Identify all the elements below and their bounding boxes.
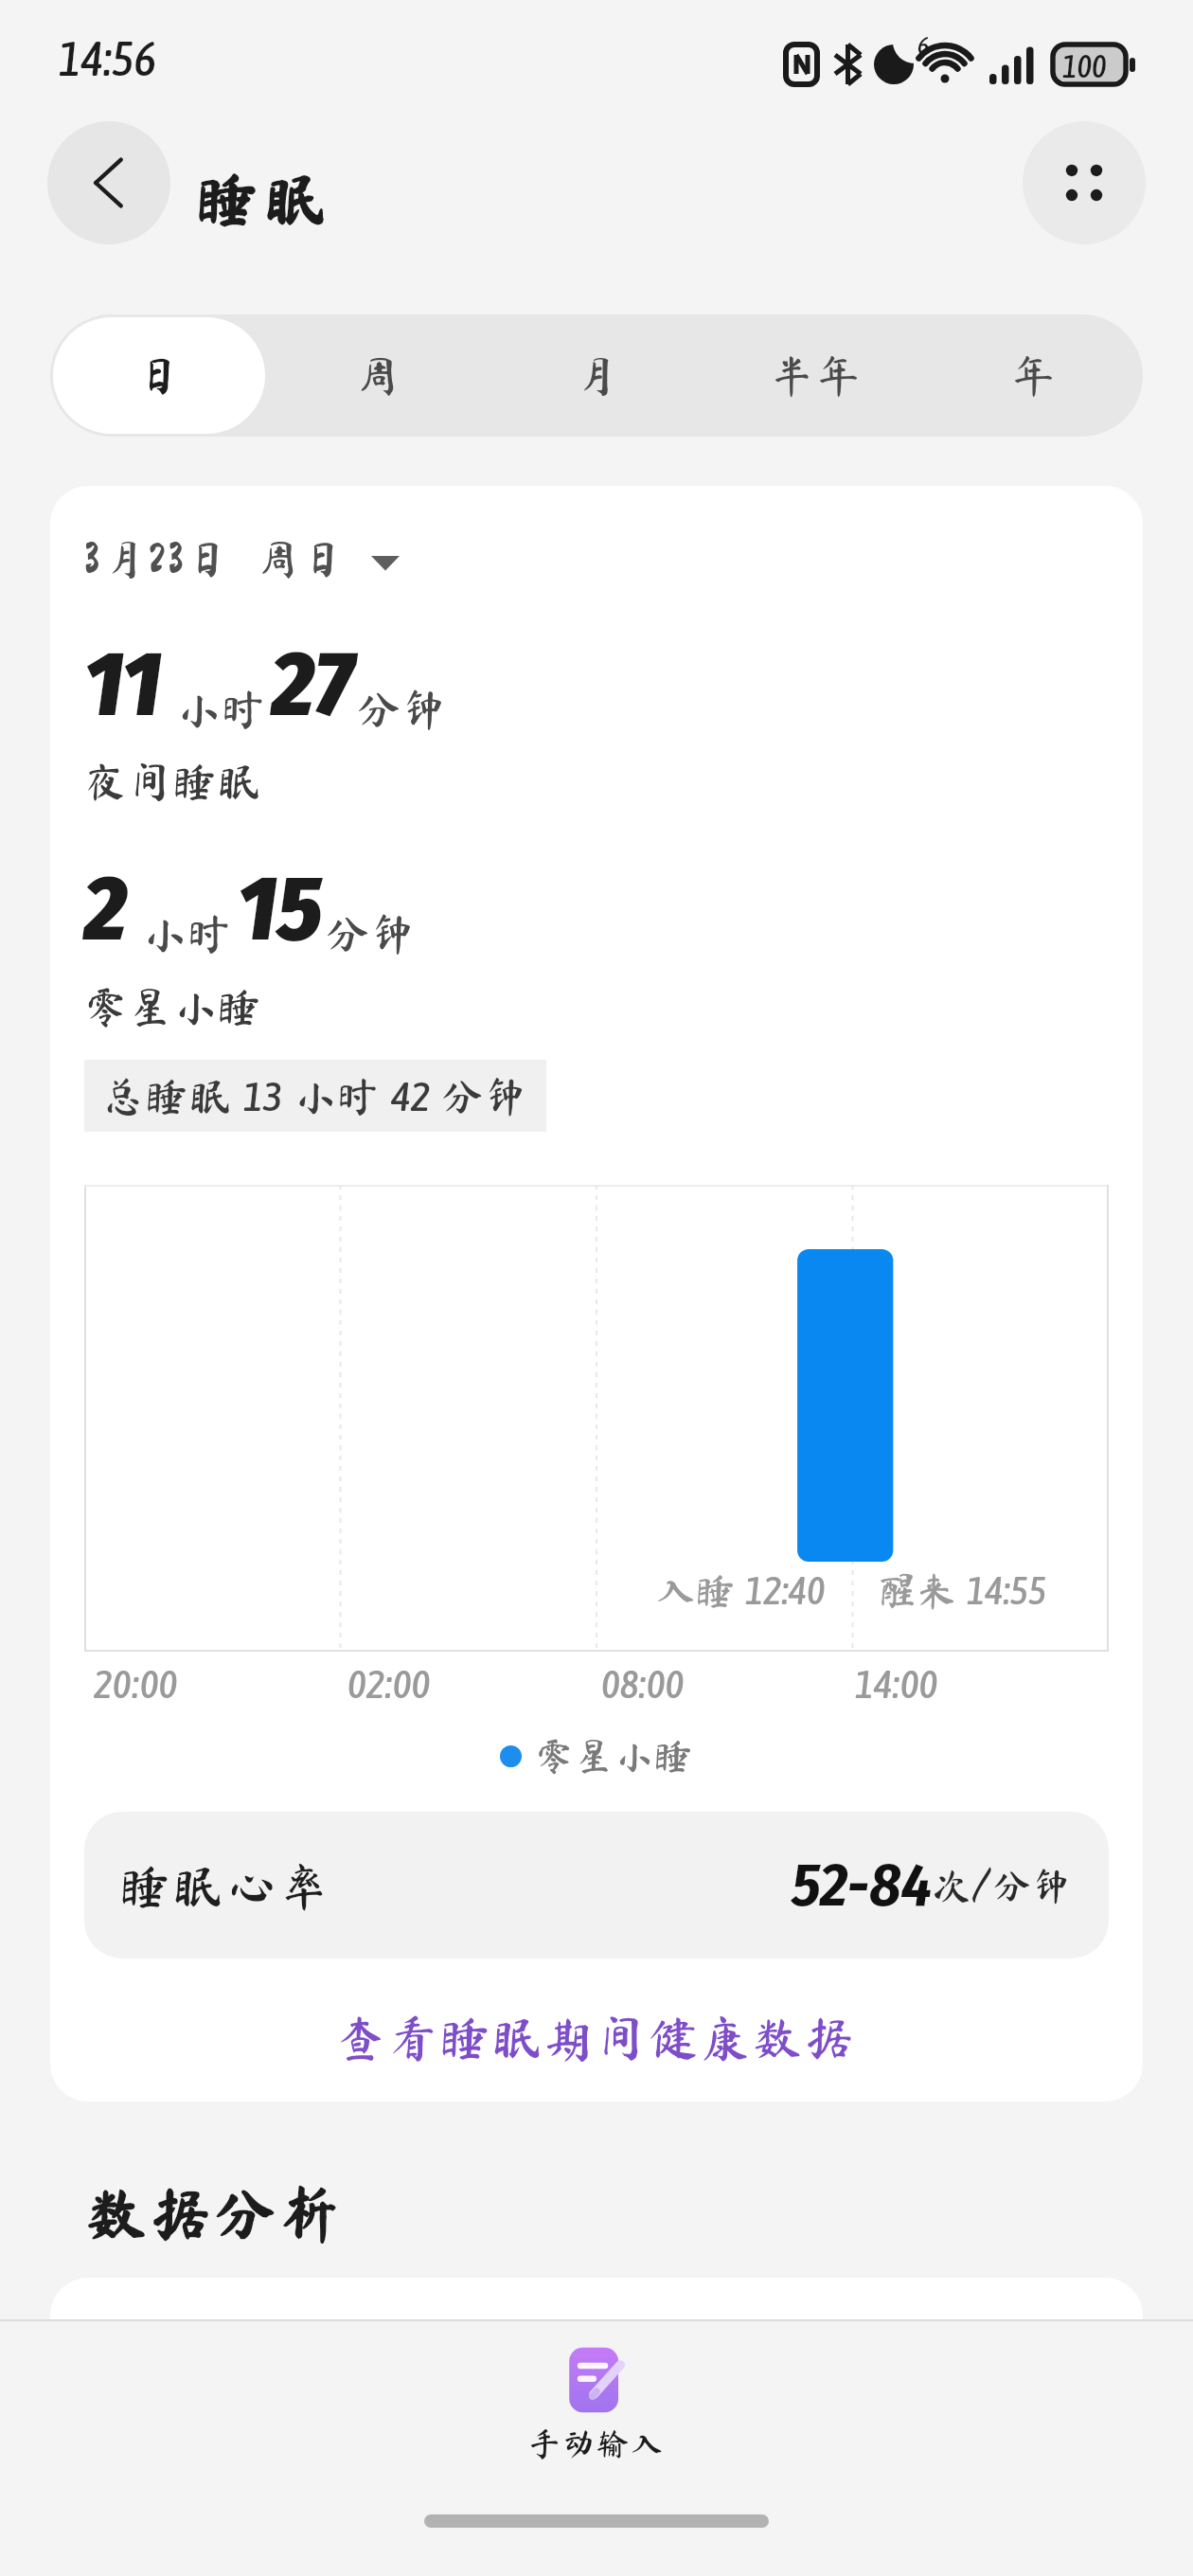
staticText: 数据分析 [86, 2183, 344, 2244]
staticText: 分钟 [325, 912, 416, 956]
staticText: 14:56 [59, 31, 156, 85]
staticText: 周 [354, 354, 401, 398]
staticText: 分钟 [356, 688, 447, 731]
staticText: 年 [1010, 354, 1057, 398]
button[interactable]: 年 [927, 317, 1140, 434]
staticText: 次/分钟 [933, 1867, 1073, 1905]
staticText: 分钟 [431, 1075, 528, 1117]
staticText: 夜间睡眠 [84, 760, 263, 802]
staticText: 08:00 [601, 1661, 685, 1707]
staticText: 醒来 [878, 1571, 967, 1610]
staticText: 3月23日 周日 [84, 538, 348, 580]
staticText: 11 [84, 630, 162, 739]
staticText: 零星小睡 [84, 985, 263, 1028]
staticText: 查看睡眠期间健康数据 [336, 2012, 858, 2062]
staticText: 小时 [175, 688, 266, 731]
staticText: 14:55 [967, 1568, 1047, 1613]
button[interactable]: 月 [490, 317, 703, 434]
button[interactable]: 周 [271, 317, 484, 434]
staticText: 6 [917, 31, 930, 60]
staticText: 小时 [283, 1075, 391, 1117]
staticText: 02:00 [347, 1661, 431, 1707]
staticText: 半年 [769, 354, 862, 398]
staticText: 总睡眠 [102, 1075, 243, 1117]
staticText: 15 [238, 854, 323, 963]
button[interactable]: 查看睡眠期间健康数据 [84, 2012, 1109, 2062]
button[interactable]: More options [1023, 121, 1146, 244]
staticText: 100 [1062, 48, 1107, 84]
staticText: 52-84 [792, 1849, 933, 1922]
staticText: 14:00 [855, 1661, 938, 1707]
button[interactable]: 手动输入 [476, 2321, 717, 2482]
staticText: 小时 [141, 912, 232, 956]
staticText: 13 [243, 1072, 283, 1119]
button[interactable]: Back [47, 121, 170, 244]
staticText: 2 [84, 854, 128, 963]
staticText: 12:40 [745, 1568, 826, 1613]
button[interactable]: 睡眠心率 [84, 1812, 1109, 1959]
staticText: 睡眠心率 [120, 1861, 333, 1910]
staticText: 20:00 [94, 1661, 178, 1707]
button[interactable]: 日 [53, 317, 265, 434]
staticText: 零星小睡 [535, 1737, 694, 1775]
staticText: 42 [391, 1072, 431, 1119]
staticText: 日 [136, 354, 183, 398]
staticText: 月 [573, 354, 619, 398]
button[interactable]: 3月23日 周日 [84, 538, 400, 580]
button[interactable]: 半年 [708, 317, 921, 434]
staticText: 手动输入 [528, 2427, 665, 2460]
staticText: 睡眠 [197, 169, 333, 229]
staticText: 27 [272, 630, 354, 739]
staticText: 入睡 [656, 1571, 745, 1610]
